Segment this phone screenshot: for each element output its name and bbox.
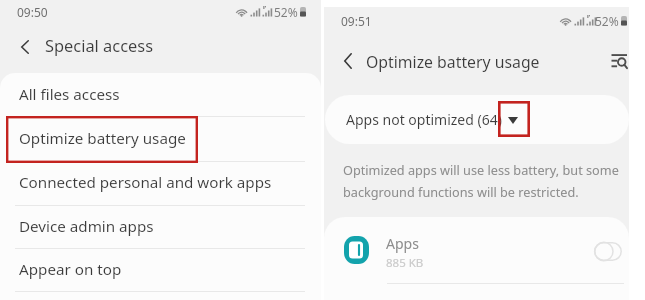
staticText: 52% (595, 13, 619, 29)
staticText: 52% (274, 4, 298, 20)
staticText: Special access (45, 34, 153, 56)
button[interactable]: Connected personal and work apps (0, 162, 321, 206)
button[interactable]: Device admin apps (0, 206, 321, 249)
staticText: Apps (386, 234, 419, 253)
staticText: Optimize battery usage (366, 51, 540, 73)
button[interactable]: Back (13, 35, 37, 59)
staticText: 09:50 (17, 4, 48, 20)
staticText: All files access (19, 84, 120, 105)
button[interactable]: All files access (0, 73, 321, 117)
staticText: background functions will be restricted. (343, 183, 579, 200)
staticText: 885 KB (386, 255, 424, 271)
button[interactable] (324, 217, 629, 283)
staticText: Device admin apps (19, 216, 154, 237)
staticText: Optimize battery usage (19, 128, 186, 149)
staticText: Connected personal and work apps (19, 172, 272, 193)
button[interactable] (325, 95, 629, 144)
staticText: Apps not optimized (64) (346, 110, 502, 129)
staticText: Appear on top (19, 259, 122, 280)
staticText: 09:51 (341, 13, 372, 29)
staticText: Optimized apps will use less battery, bu… (343, 161, 619, 178)
button[interactable]: Optimize battery usage (0, 117, 321, 162)
button[interactable]: Toggle optimization (594, 241, 622, 262)
button[interactable]: Search (611, 53, 627, 69)
button[interactable]: Back (336, 49, 360, 73)
button[interactable]: Appear on top (0, 249, 321, 292)
